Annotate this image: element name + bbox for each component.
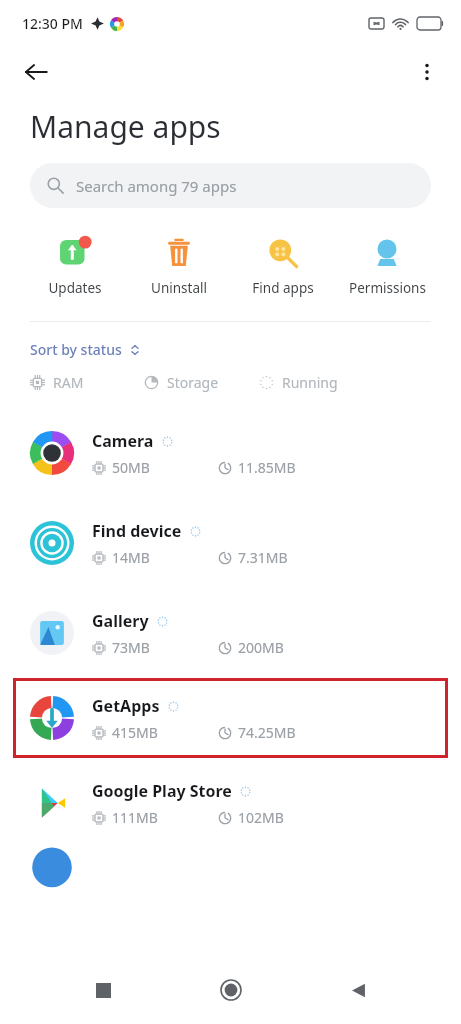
staticText: Gallery	[92, 610, 149, 632]
staticText: Google Play Store	[92, 780, 232, 802]
staticText: Find device	[92, 520, 182, 542]
button[interactable]: Find device	[0, 498, 461, 588]
staticText: Manage apps	[30, 106, 221, 147]
button[interactable]: Gallery	[0, 588, 461, 678]
staticText: 11.85MB	[238, 458, 296, 477]
staticText: Running	[282, 373, 338, 392]
button[interactable]: Permissions	[335, 234, 439, 299]
staticText: Uninstall	[151, 279, 207, 297]
staticText: 7.31MB	[238, 548, 288, 567]
button[interactable]: Running	[259, 373, 374, 392]
staticText: 50MB	[112, 458, 200, 477]
button[interactable]: Google Play Store	[0, 758, 461, 848]
button[interactable]: Back	[334, 966, 382, 1014]
staticText: 200MB	[238, 638, 284, 657]
button[interactable]: Uninstall	[127, 234, 231, 299]
staticText: 73MB	[112, 638, 200, 657]
button[interactable]: Search among 79 apps	[30, 163, 431, 208]
staticText: 111MB	[112, 808, 200, 827]
staticText: 415MB	[112, 723, 200, 742]
staticText: GetApps	[92, 695, 160, 717]
staticText: 14MB	[112, 548, 200, 567]
staticText: Storage	[167, 373, 219, 392]
button[interactable]: Sort by status	[30, 340, 141, 359]
button[interactable]: Camera	[0, 408, 461, 498]
button[interactable]: Updates	[22, 234, 127, 299]
button[interactable]: GetApps	[13, 678, 448, 758]
staticText: Permissions	[349, 279, 426, 297]
staticText: Sort by status	[30, 340, 122, 359]
button[interactable]: RAM	[30, 373, 144, 392]
staticText: Search among 79 apps	[76, 176, 237, 196]
staticText: Find apps	[252, 279, 314, 297]
staticText: Camera	[92, 430, 154, 452]
button[interactable]: Storage	[144, 373, 259, 392]
button[interactable]: Recent apps	[79, 966, 127, 1014]
staticText: RAM	[53, 373, 84, 392]
staticText: Updates	[48, 279, 102, 297]
button[interactable]: Find apps	[231, 234, 335, 299]
button[interactable]: Home	[207, 966, 255, 1014]
button[interactable]: Back	[14, 50, 58, 94]
staticText: 12:30 PM	[22, 14, 83, 33]
staticText: 74.25MB	[238, 723, 296, 742]
staticText: 102MB	[238, 808, 284, 827]
button[interactable]: More options	[405, 50, 449, 94]
